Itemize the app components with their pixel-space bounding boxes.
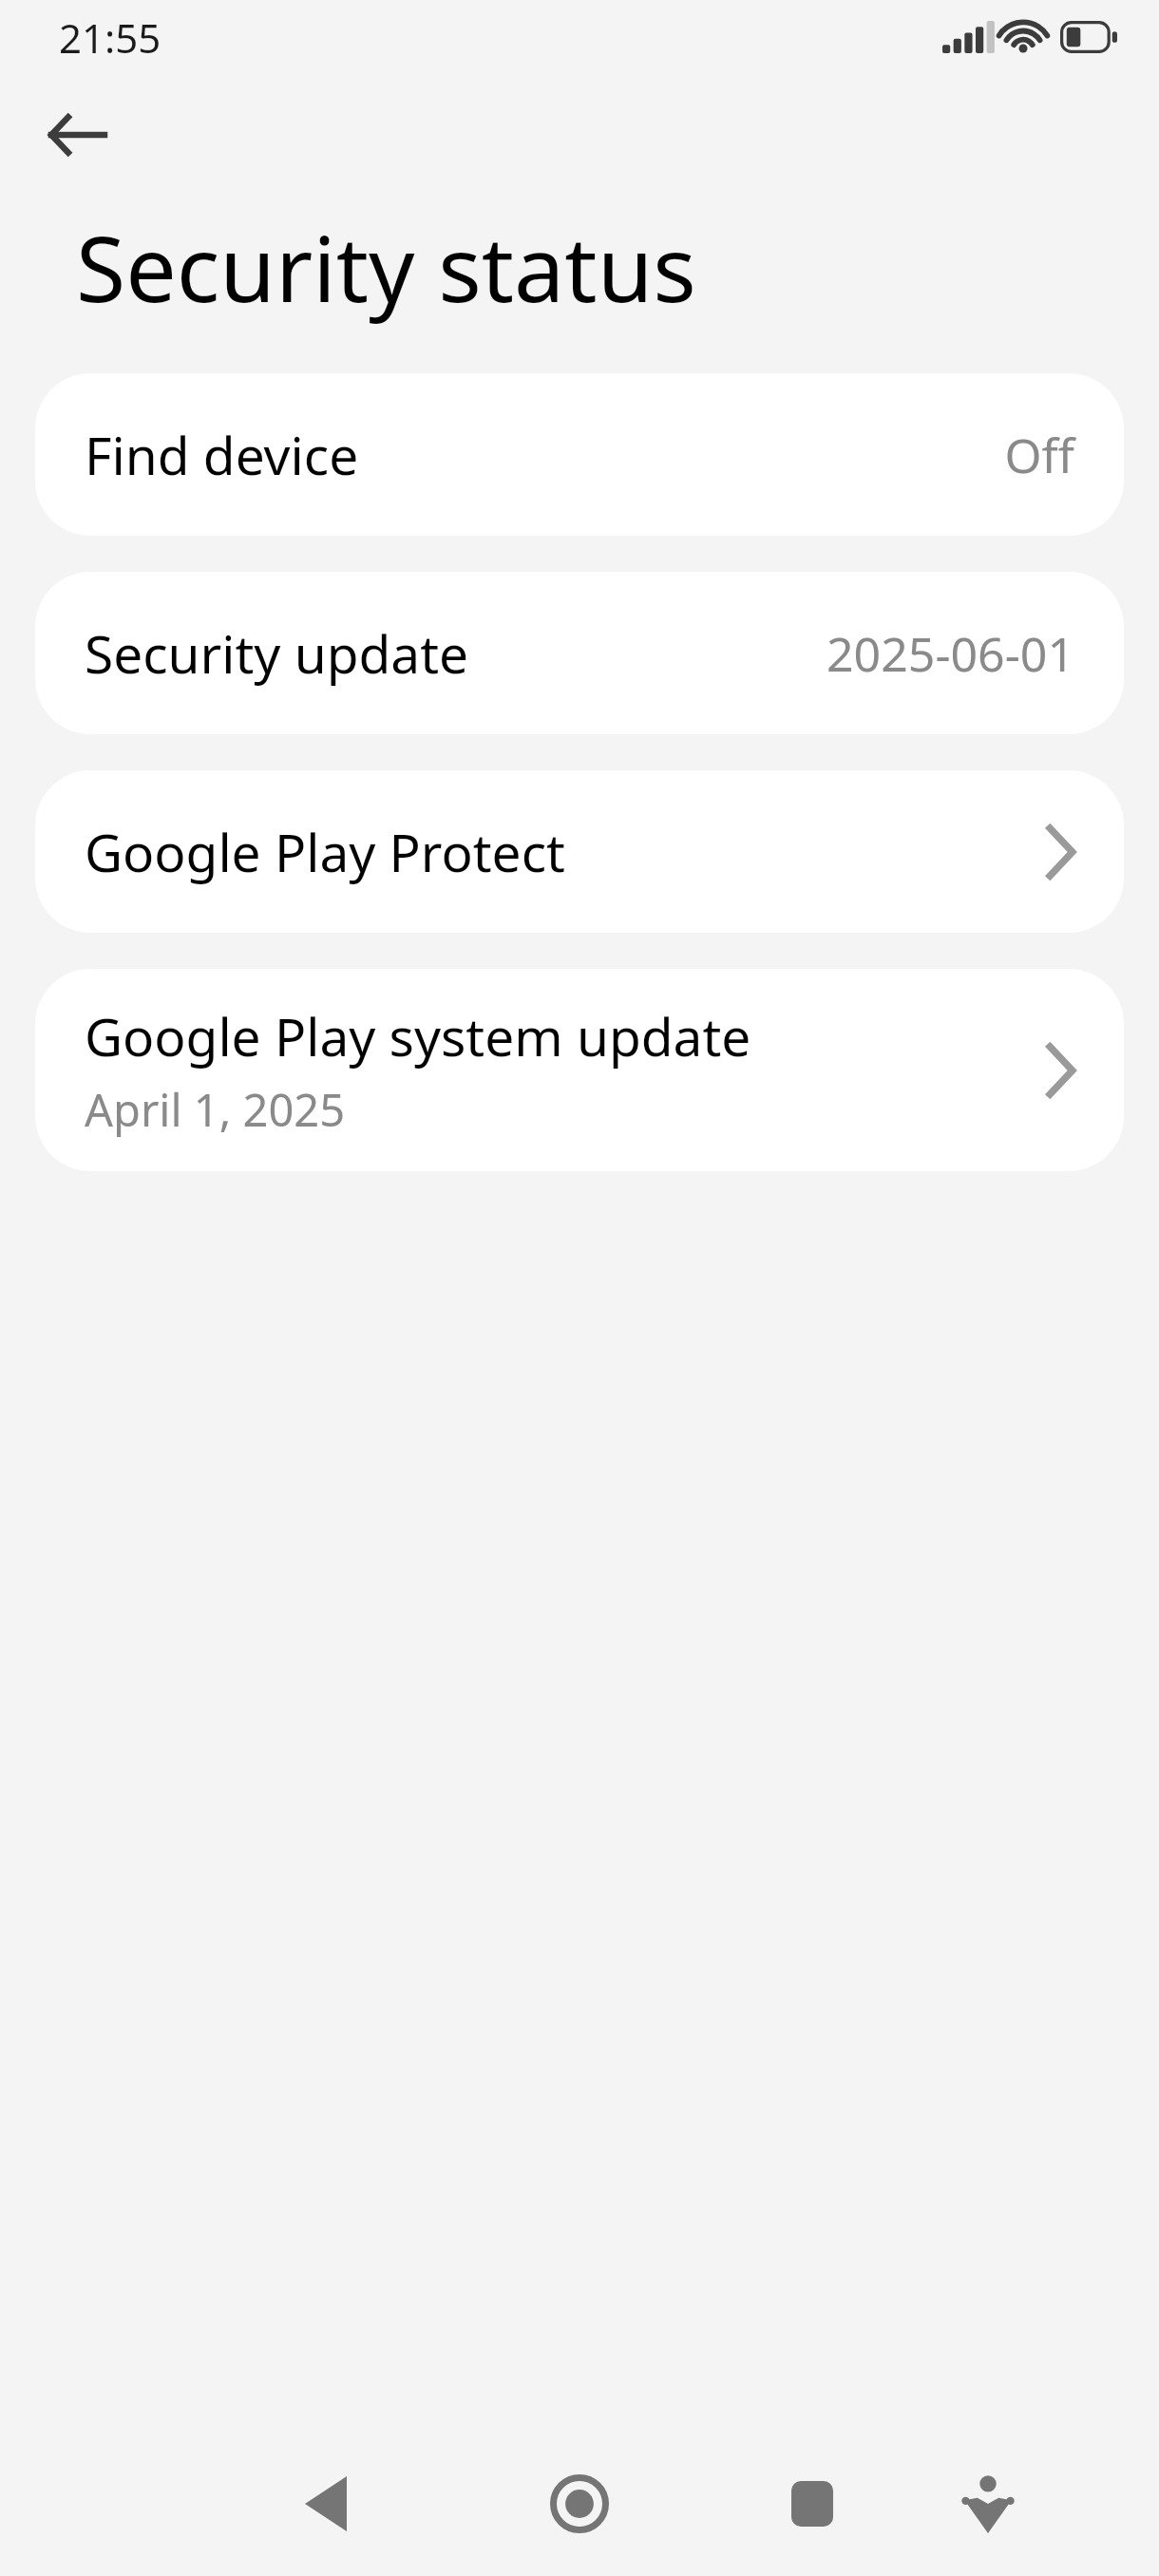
staticText: Google Play system update xyxy=(85,1000,751,1071)
staticText: Security status xyxy=(76,205,696,328)
button[interactable]: Google Play system update xyxy=(35,969,1124,1171)
button[interactable]: Recent apps xyxy=(741,2433,883,2575)
button[interactable]: Home xyxy=(508,2433,651,2575)
button[interactable]: Pull down notification shade xyxy=(917,2433,1059,2575)
staticText: 2025-06-01 xyxy=(826,621,1074,686)
button[interactable]: Back xyxy=(28,85,127,184)
staticText: Off xyxy=(1004,423,1074,487)
button[interactable]: Security update xyxy=(35,572,1124,734)
staticText: Security update xyxy=(85,617,469,689)
staticText: Google Play Protect xyxy=(85,816,565,887)
staticText: April 1, 2025 xyxy=(85,1079,346,1140)
staticText: Find device xyxy=(85,419,359,490)
staticText: 21:55 xyxy=(59,10,161,65)
button[interactable]: Google Play Protect xyxy=(35,770,1124,933)
button[interactable]: Back xyxy=(255,2433,397,2575)
button[interactable]: Find device xyxy=(35,373,1124,536)
